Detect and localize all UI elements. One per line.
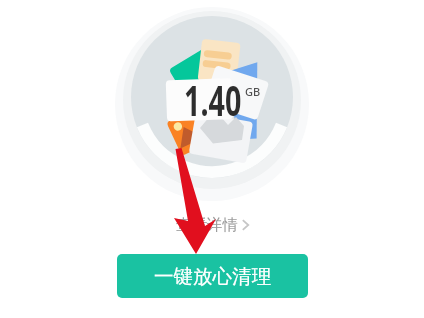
staticText: 1.40 (184, 72, 241, 128)
staticText: GB (245, 84, 261, 99)
button[interactable]: 一键放心清理 (117, 254, 308, 298)
button[interactable]: 查看详情 (176, 215, 254, 235)
staticText: 一键放心清理 (154, 264, 271, 289)
staticText: 查看详情 (176, 215, 238, 235)
